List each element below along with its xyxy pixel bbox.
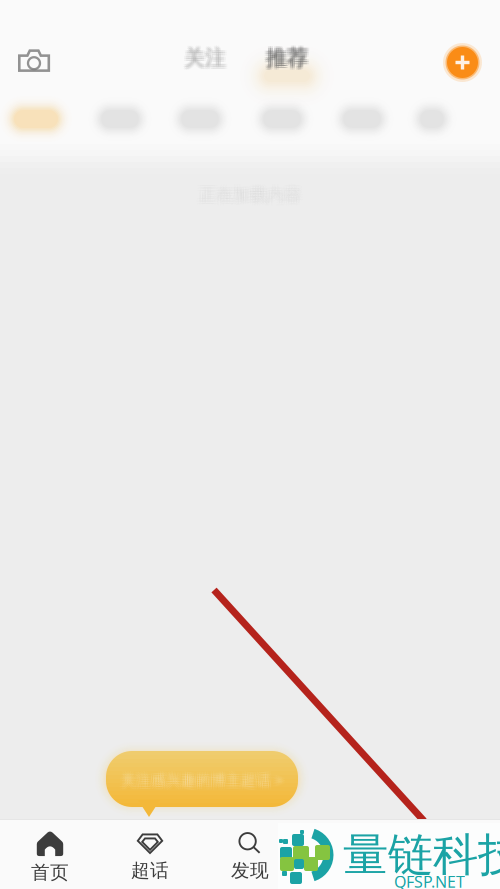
staticText: 关注感兴趣的博主超话 > [119, 770, 281, 790]
staticText: 消息 [331, 859, 369, 882]
button[interactable]: New post [437, 37, 488, 88]
staticText: 关注感兴趣的博主超话 > [123, 770, 285, 790]
button[interactable]: Camera [8, 38, 60, 83]
staticText: 推荐 [264, 47, 306, 73]
staticText: 关注感兴趣的博主超话 > [123, 768, 285, 788]
staticText: 关注 [184, 45, 226, 71]
staticText: 关注 [184, 43, 226, 69]
staticText: 量链科技 [343, 827, 500, 883]
staticText: 正在加载内容 [202, 182, 304, 203]
staticText: 首页 [31, 861, 69, 884]
staticText: 正在加载内容 [202, 184, 304, 206]
staticText: 关注 [186, 45, 228, 71]
staticText: 关注感兴趣的博主超话 > [121, 770, 283, 790]
button[interactable]: 消息 [300, 820, 400, 889]
staticText: 关注感兴趣的博主超话 > [119, 768, 281, 788]
staticText: 正在加载内容 [199, 182, 301, 203]
staticText: 推荐 [266, 43, 308, 69]
button[interactable]: 我 [400, 820, 500, 889]
staticText: 推荐 [266, 47, 308, 73]
staticText: 我 [440, 859, 459, 882]
staticText: 推荐 [268, 43, 310, 69]
staticText: QFSP.NET [394, 871, 465, 889]
button[interactable] [406, 96, 458, 142]
staticText: 正在加载内容 [199, 187, 301, 208]
staticText: 推荐 [268, 45, 310, 71]
button[interactable]: 首页 [0, 818, 100, 889]
button[interactable]: 关注 [159, 30, 251, 90]
staticText: 发现 [231, 859, 269, 882]
button[interactable]: 推荐 [241, 30, 333, 90]
staticText: 正在加载内容 [199, 184, 301, 206]
staticText: 正在加载内容 [196, 184, 298, 206]
staticText: 推荐 [268, 47, 310, 73]
staticText: 关注 [184, 47, 226, 73]
button[interactable] [329, 96, 395, 142]
button[interactable] [0, 96, 72, 142]
staticText: 正在加载内容 [202, 187, 304, 208]
staticText: 关注 [186, 43, 228, 69]
button[interactable] [167, 96, 233, 142]
staticText: 正在加载内容 [196, 187, 298, 208]
staticText: 正在加载内容 [196, 182, 298, 203]
staticText: 关注感兴趣的博主超话 > [121, 772, 283, 792]
staticText: 关注感兴趣的博主超话 > [119, 772, 281, 792]
staticText: 推荐 [264, 45, 306, 71]
staticText: 关注 [182, 45, 224, 71]
button[interactable]: 超话 [100, 820, 200, 889]
staticText: 推荐 [266, 45, 308, 71]
staticText: 关注感兴趣的博主超话 > [121, 768, 283, 788]
button[interactable] [87, 96, 153, 142]
button[interactable] [249, 96, 315, 142]
button[interactable]: 发现 [200, 820, 300, 889]
staticText: 关注 [182, 43, 224, 69]
staticText: 关注感兴趣的博主超话 > [123, 772, 285, 792]
staticText: 关注 [186, 47, 228, 73]
staticText: 推荐 [264, 43, 306, 69]
staticText: 超话 [131, 859, 169, 882]
staticText: 关注 [182, 47, 224, 73]
